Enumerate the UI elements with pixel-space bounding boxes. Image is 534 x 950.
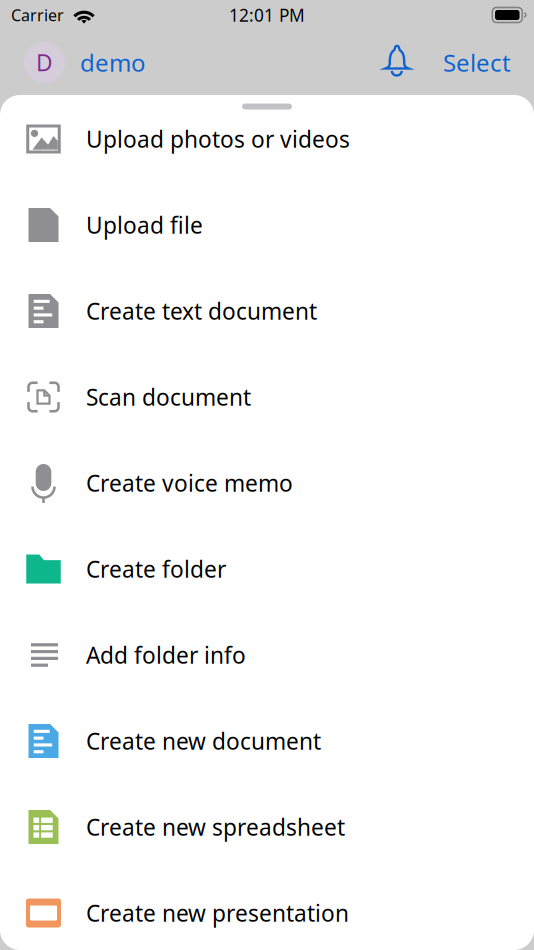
button[interactable]: D	[24, 34, 146, 91]
button[interactable]: Scan document	[0, 354, 534, 440]
staticText: D	[36, 47, 53, 77]
button[interactable]: Create new presentation	[0, 870, 534, 950]
button[interactable]: Create new spreadsheet	[0, 784, 534, 870]
button[interactable]: Create text document	[0, 268, 534, 354]
button[interactable]: Upload photos or videos	[0, 96, 534, 182]
staticText: Create new spreadsheet	[86, 812, 345, 842]
staticText: Scan document	[86, 382, 251, 412]
staticText: 12:01 PM	[229, 3, 305, 26]
button[interactable]: Create new document	[0, 698, 534, 784]
staticText: Create voice memo	[86, 468, 293, 498]
staticText: Create text document	[86, 296, 317, 326]
button[interactable]: Select	[413, 37, 511, 88]
staticText: Select	[443, 47, 511, 78]
staticText: Create new presentation	[86, 898, 349, 928]
staticText: Carrier	[11, 4, 64, 26]
staticText: demo	[80, 47, 146, 78]
button[interactable]: Create voice memo	[0, 440, 534, 526]
staticText: Upload photos or videos	[86, 124, 350, 154]
staticText: Upload file	[86, 210, 203, 240]
button[interactable]: Add folder info	[0, 612, 534, 698]
button[interactable]: Upload file	[0, 182, 534, 268]
staticText: Add folder info	[86, 640, 246, 670]
button[interactable]: Create folder	[0, 526, 534, 612]
staticText: Create new document	[86, 726, 321, 756]
button[interactable]: Notifications	[375, 40, 413, 84]
staticText: Create folder	[86, 554, 226, 584]
